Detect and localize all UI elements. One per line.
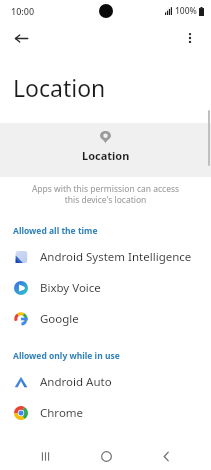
staticText: Allowed all the time bbox=[13, 225, 98, 237]
button[interactable]: Google bbox=[0, 303, 211, 334]
button[interactable]: Chrome bbox=[0, 397, 211, 428]
button[interactable]: Bixby Voice bbox=[0, 272, 211, 303]
staticText: Apps with this permission can access thi… bbox=[24, 183, 187, 205]
button[interactable]: Back bbox=[6, 23, 36, 53]
staticText: 10:00 bbox=[11, 5, 35, 17]
button[interactable]: More options bbox=[175, 23, 205, 53]
staticText: Allowed only while in use bbox=[13, 350, 120, 362]
staticText: 100% bbox=[175, 5, 197, 17]
staticText: Android Auto bbox=[40, 374, 112, 390]
button[interactable]: Android System Intelligence bbox=[0, 241, 211, 272]
staticText: Google bbox=[40, 311, 79, 327]
button[interactable]: Recents bbox=[30, 442, 60, 470]
button[interactable]: Android Auto bbox=[0, 366, 211, 397]
button[interactable]: Back bbox=[151, 442, 181, 470]
staticText: Not allowed bbox=[13, 444, 65, 456]
staticText: Chrome bbox=[40, 405, 84, 421]
staticText: Location bbox=[13, 72, 106, 103]
staticText: Android System Intelligence bbox=[40, 249, 192, 265]
button[interactable]: Home bbox=[91, 442, 121, 470]
staticText: Bixby Voice bbox=[40, 280, 101, 296]
staticText: Location bbox=[82, 148, 130, 163]
